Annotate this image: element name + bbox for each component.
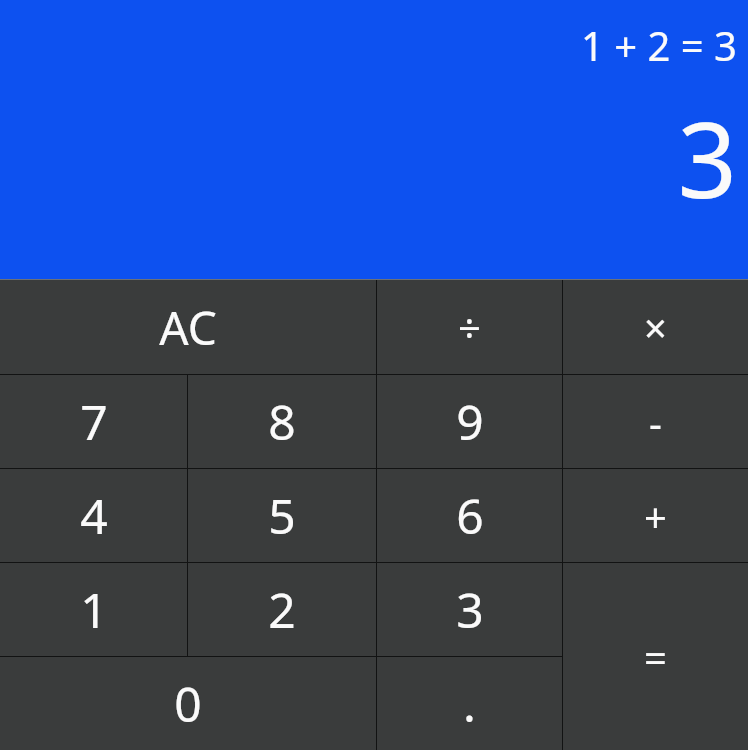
staticText: 6 <box>456 483 484 548</box>
button[interactable]: Equals <box>563 563 748 750</box>
staticText: 1 + 2 = 3 <box>581 18 737 72</box>
button[interactable]: 0 <box>0 657 376 750</box>
button[interactable]: 9 <box>377 375 562 468</box>
button[interactable]: 3 <box>377 563 562 656</box>
staticText: 7 <box>80 389 108 454</box>
staticText: 0 <box>174 671 202 736</box>
button[interactable]: AC <box>0 280 376 374</box>
button[interactable]: 5 <box>188 469 376 562</box>
button[interactable]: Multiply <box>563 280 748 374</box>
staticText: 1 <box>80 577 108 642</box>
button[interactable]: 2 <box>188 563 376 656</box>
staticText: × <box>644 300 667 354</box>
staticText: 3 <box>677 87 737 229</box>
button[interactable]: Add <box>563 469 748 562</box>
staticText: ÷ <box>458 300 481 354</box>
button[interactable]: Decimal point <box>377 657 562 750</box>
button[interactable]: Subtract <box>563 375 748 468</box>
button[interactable]: 1 <box>0 563 187 656</box>
button[interactable]: 8 <box>188 375 376 468</box>
staticText: 4 <box>80 483 108 548</box>
staticText: 8 <box>268 389 296 454</box>
button[interactable]: 4 <box>0 469 187 562</box>
staticText: . <box>463 671 476 736</box>
button[interactable]: 7 <box>0 375 187 468</box>
staticText: 3 <box>456 577 484 642</box>
staticText: AC <box>159 296 217 359</box>
staticText: 9 <box>456 389 484 454</box>
staticText: + <box>644 489 667 543</box>
button[interactable]: Divide <box>377 280 562 374</box>
button[interactable]: 6 <box>377 469 562 562</box>
staticText: - <box>649 395 662 449</box>
staticText: = <box>644 630 667 684</box>
staticText: 5 <box>268 483 296 548</box>
staticText: 2 <box>268 577 296 642</box>
